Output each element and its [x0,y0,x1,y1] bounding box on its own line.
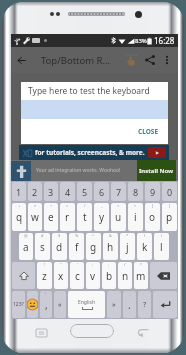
button[interactable] [12,262,35,289]
staticText: / [84,203,86,208]
button[interactable]: Tap hand [122,47,141,73]
button[interactable]: » [107,291,121,318]
button[interactable]: 7 [111,182,126,201]
button[interactable]: e [44,203,58,231]
button[interactable]: English [68,291,105,318]
staticText: , [45,298,48,312]
button[interactable]: Recent apps [36,329,47,337]
staticText: ) [161,233,163,238]
staticText: 123? [13,301,24,308]
button[interactable]: s [35,233,50,260]
button[interactable]: 5 [77,182,92,201]
button[interactable]: 3 [44,182,58,201]
staticText: & [109,233,112,238]
staticText: i [134,210,137,224]
button[interactable]: g [86,233,101,260]
button[interactable]: ? [138,291,151,318]
button[interactable]: Back [137,328,149,337]
button[interactable]: k [137,233,152,260]
staticText: ' [77,262,78,267]
staticText: 4 [65,186,71,198]
button[interactable]: , [40,291,52,318]
staticText: _ [101,203,103,208]
button[interactable]: 123? [12,291,25,318]
button[interactable]: i [128,203,143,231]
button[interactable]: h [103,233,118,260]
button[interactable]: 8 [128,182,143,201]
button[interactable]: More options [159,47,175,73]
button[interactable]: z [37,262,52,289]
staticText: Install Now [139,167,174,175]
button[interactable]: u [111,203,126,231]
staticText: w [31,210,39,224]
button[interactable]: t [77,203,92,231]
button[interactable]: Back [11,47,31,73]
staticText: s [40,240,45,254]
button[interactable]: Share [141,47,159,73]
button[interactable]: 2 [28,182,42,201]
button[interactable]: p [162,203,177,231]
staticText: z [42,269,47,283]
button[interactable]: « [54,291,66,318]
button[interactable]: n [118,262,132,289]
button[interactable]: a [19,233,33,260]
button[interactable]: b [102,262,116,289]
staticText: % [75,233,79,238]
staticText: = [66,203,69,208]
staticText: m [136,269,146,283]
staticText: 6 [99,186,105,198]
button[interactable]: . [123,291,136,318]
staticText: ! [44,262,46,267]
staticText: y [99,210,105,224]
staticText: × [34,203,37,208]
staticText: o [149,210,156,224]
button[interactable]: o [145,203,160,231]
button[interactable]: w [28,203,42,231]
button[interactable]: y [94,203,109,231]
staticText: a [23,240,29,254]
button[interactable] [153,291,177,318]
button[interactable]: c [70,262,84,289]
button[interactable]: v [86,262,100,289]
staticText: ÷ [50,203,53,208]
staticText: 9 [150,186,156,198]
staticText: . [128,298,131,312]
staticText: 0 [167,186,173,198]
button[interactable]: 9 [145,182,160,201]
button[interactable]: 4 [60,182,75,201]
staticText: $ [58,233,61,238]
button[interactable]: f [69,233,84,260]
staticText: CLOSE [138,127,159,136]
button[interactable]: d [52,233,67,260]
staticText: k [142,240,148,254]
staticText: ^ [92,233,95,238]
button[interactable]: l [154,233,169,260]
button[interactable]: CLOSE [136,125,161,138]
button[interactable]: m [134,262,148,289]
staticText: v [90,269,96,283]
staticText: < [117,203,120,208]
button[interactable]: 0 [162,182,177,201]
button[interactable]: q [12,203,26,231]
button[interactable]: 6 [94,182,109,201]
button[interactable]: x [54,262,68,289]
button[interactable]: j [120,233,135,260]
staticText: r [65,210,70,224]
button[interactable]: 1 [12,182,26,201]
staticText: ? [140,262,142,267]
staticText: 5 [82,186,88,198]
staticText: t [83,210,87,224]
button[interactable] [27,291,38,318]
staticText: « [58,300,62,310]
button[interactable]: for tutorials, screencasts, & more. [19,145,169,160]
button[interactable]: r [60,203,75,231]
staticText: [ [152,203,154,208]
button[interactable]: Install Now [137,160,176,181]
staticText: ] [169,203,171,208]
button[interactable]: Home [70,324,114,338]
staticText: # [41,233,44,238]
staticText: / [124,262,126,267]
button[interactable]: Play video [148,147,166,158]
button[interactable] [150,262,177,289]
staticText: ( [144,233,146,238]
